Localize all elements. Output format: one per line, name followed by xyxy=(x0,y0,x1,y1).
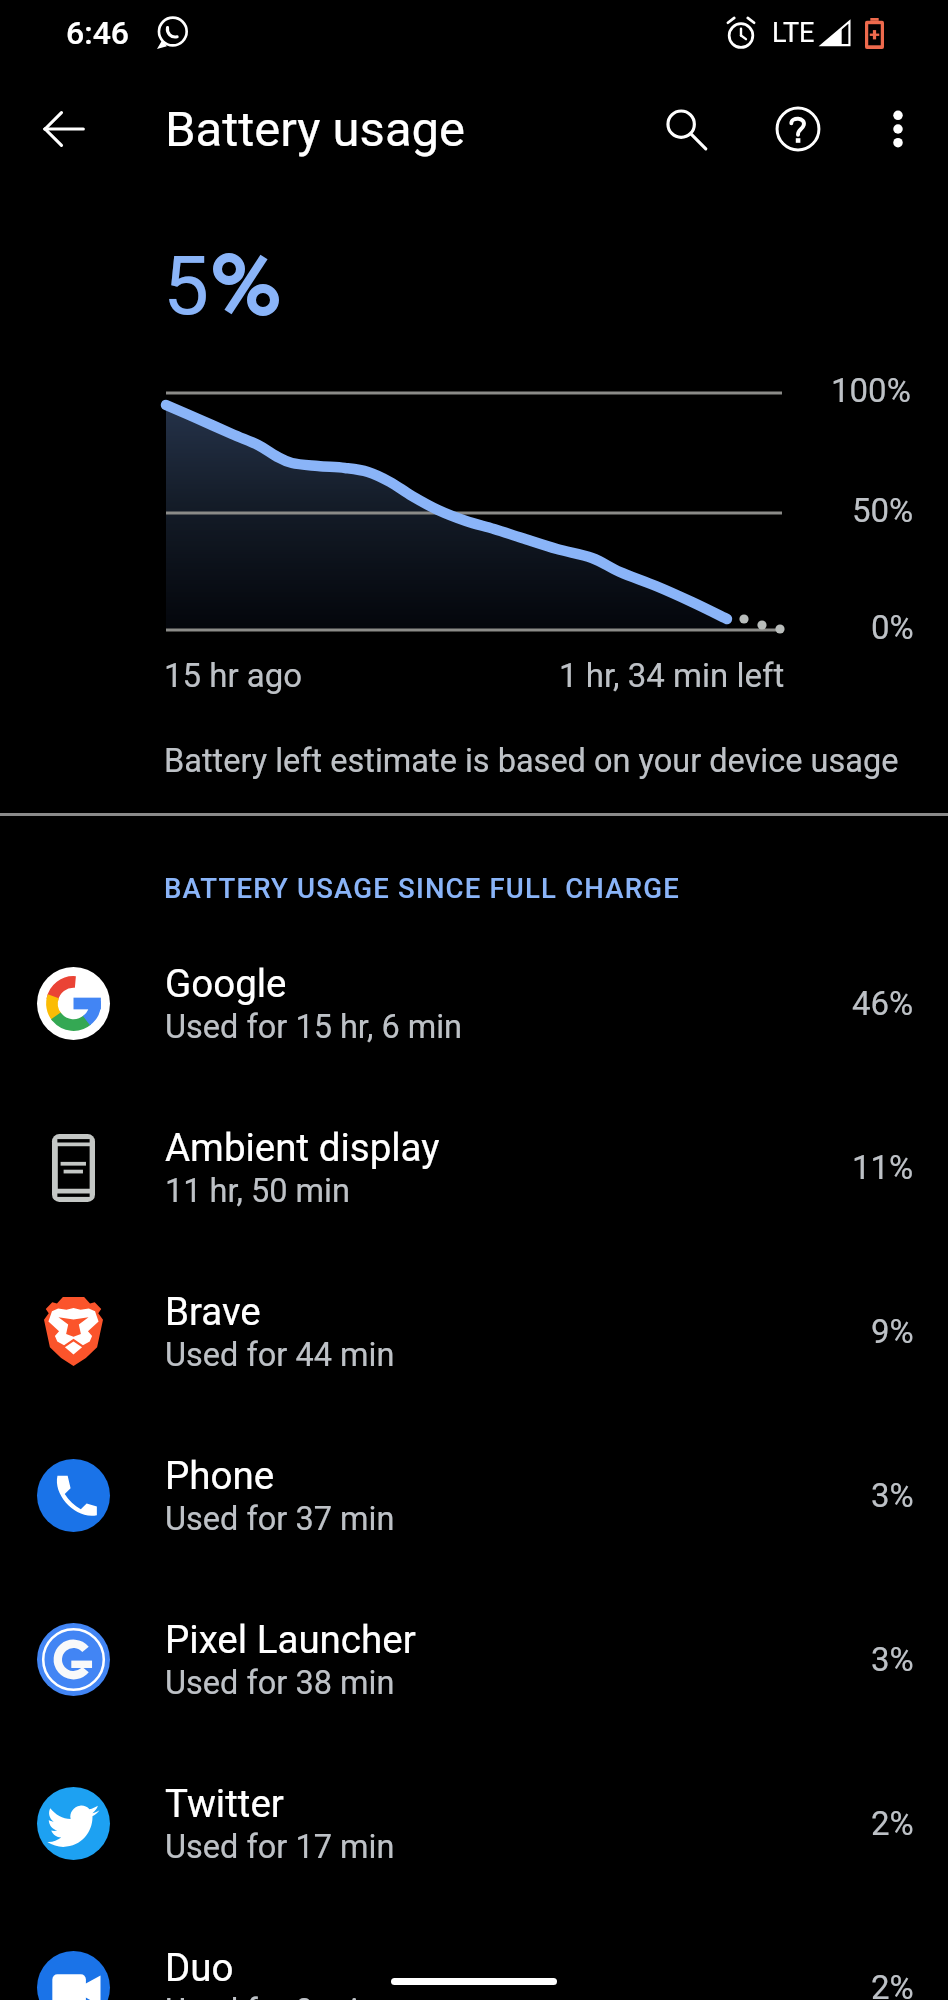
staticText: Duo xyxy=(165,1945,234,1990)
staticText: 5 xyxy=(163,238,210,334)
staticText: 11 hr, 50 min xyxy=(165,1172,350,1210)
button[interactable]: Search xyxy=(648,91,724,167)
staticText: 6:46 xyxy=(66,14,129,52)
staticText: Brave xyxy=(165,1289,261,1334)
button[interactable]: Brave xyxy=(0,1249,948,1413)
staticText: Used for 37 min xyxy=(165,1500,395,1538)
button[interactable]: Twitter xyxy=(0,1741,948,1905)
staticText: Used for 17 min xyxy=(165,1828,395,1866)
button[interactable]: Pixel Launcher xyxy=(0,1577,948,1741)
staticText: 2% xyxy=(871,1968,914,2000)
button[interactable]: Help xyxy=(760,91,836,167)
staticText: LTE xyxy=(772,17,815,49)
staticText: Twitter xyxy=(165,1781,284,1826)
staticText: Battery left estimate is based on your d… xyxy=(164,742,899,780)
button[interactable]: Back xyxy=(26,91,102,167)
staticText: 100% xyxy=(831,371,911,410)
staticText: BATTERY USAGE SINCE FULL CHARGE xyxy=(164,872,680,904)
button[interactable]: Ambient display xyxy=(0,1085,948,1249)
staticText: 3% xyxy=(871,1640,914,1679)
staticText: Battery usage xyxy=(165,101,466,158)
staticText: Used for 15 hr, 6 min xyxy=(165,1008,463,1046)
staticText: Used for 9 min xyxy=(165,1992,377,2000)
staticText: 11% xyxy=(852,1148,914,1187)
staticText: Pixel Launcher xyxy=(165,1617,416,1662)
button[interactable]: Phone xyxy=(0,1413,948,1577)
staticText: 9% xyxy=(871,1312,914,1351)
staticText: 2% xyxy=(871,1804,914,1843)
button[interactable]: Google xyxy=(0,921,948,1085)
staticText: Phone xyxy=(165,1453,275,1498)
staticText: Used for 44 min xyxy=(165,1336,395,1374)
staticText: Used for 38 min xyxy=(165,1664,395,1702)
staticText: Google xyxy=(165,961,287,1006)
staticText: 46% xyxy=(852,984,914,1023)
staticText: 0% xyxy=(871,608,914,647)
staticText: Ambient display xyxy=(165,1125,440,1170)
button[interactable]: Duo xyxy=(0,1905,948,2000)
staticText: 3% xyxy=(871,1476,914,1515)
staticText: 50% xyxy=(852,491,914,530)
button[interactable]: More options xyxy=(860,91,936,167)
staticText: 1 hr, 34 min left xyxy=(559,656,785,695)
staticText: 15 hr ago xyxy=(164,656,303,695)
